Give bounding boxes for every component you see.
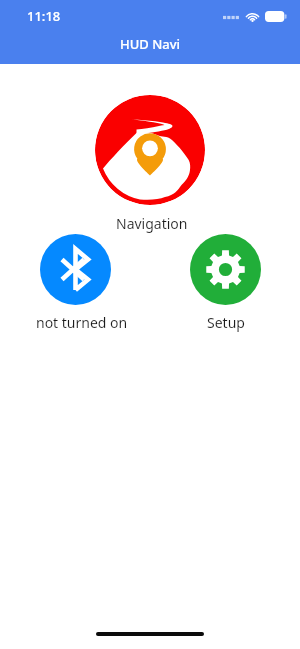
staticText: Setup [207, 313, 245, 332]
staticText: 11:18 [27, 7, 61, 25]
button[interactable]: Navigation [95, 95, 205, 205]
button[interactable]: Setup [190, 234, 261, 305]
staticText: HUD Navi [120, 35, 181, 53]
staticText: Navigation [116, 214, 188, 233]
staticText: not turned on [36, 313, 128, 332]
button[interactable]: Bluetooth: not turned on [40, 234, 111, 305]
